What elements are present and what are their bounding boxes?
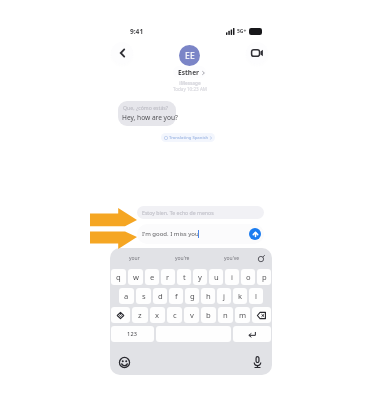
button[interactable]: [137, 224, 264, 244]
staticText: you've: [224, 255, 240, 262]
button[interactable]: b: [201, 307, 216, 323]
button[interactable]: [137, 206, 264, 219]
staticText: EE: [185, 50, 195, 62]
button[interactable]: EE: [179, 45, 200, 66]
button[interactable]: a: [119, 288, 134, 304]
button[interactable]: w: [128, 269, 143, 285]
button[interactable]: h: [201, 288, 215, 304]
staticText: 9:41: [130, 27, 144, 36]
staticText: r: [166, 272, 170, 282]
staticText: a: [124, 291, 129, 301]
button[interactable]: q: [111, 269, 126, 285]
staticText: j: [223, 291, 225, 301]
button[interactable]: p: [257, 269, 271, 285]
staticText: Que, ¿cómo estás?: [123, 104, 169, 111]
button[interactable]: Back: [111, 42, 133, 64]
staticText: t: [183, 272, 186, 282]
button[interactable]: Shift: [111, 307, 130, 323]
staticText: Esther: [178, 68, 200, 77]
button[interactable]: j: [217, 288, 231, 304]
staticText: you're: [175, 255, 190, 262]
staticText: k: [238, 291, 243, 301]
button[interactable]: t: [177, 269, 191, 285]
button[interactable]: n: [218, 307, 233, 323]
button[interactable]: Return: [233, 326, 271, 342]
button[interactable]: [118, 101, 176, 126]
staticText: 5G+: [237, 28, 247, 35]
staticText: o: [246, 272, 251, 282]
button[interactable]: l: [249, 288, 263, 304]
staticText: iMessage: [179, 80, 201, 86]
staticText: i: [231, 272, 233, 282]
button[interactable]: Dictate: [250, 354, 265, 369]
staticText: c: [173, 310, 177, 320]
button[interactable]: Backspace: [252, 307, 271, 323]
staticText: y: [198, 272, 202, 282]
button[interactable]: Video call: [246, 42, 268, 64]
staticText: z: [138, 310, 142, 320]
staticText: v: [190, 310, 194, 320]
staticText: n: [223, 310, 228, 320]
staticText: I'm good. I miss you: [142, 230, 199, 238]
button[interactable]: Emoji: [117, 355, 132, 370]
staticText: 123: [127, 330, 138, 338]
staticText: Translating Spanish: [169, 135, 209, 141]
button[interactable]: v: [184, 307, 199, 323]
button[interactable]: y: [193, 269, 207, 285]
button[interactable]: r: [161, 269, 175, 285]
staticText: Today 10:23 AM: [173, 86, 207, 92]
button[interactable]: your: [110, 248, 158, 269]
staticText: g: [190, 291, 195, 301]
staticText: s: [142, 291, 146, 301]
button[interactable]: you've: [207, 248, 256, 269]
staticText: l: [255, 291, 257, 301]
button[interactable]: g: [185, 288, 199, 304]
staticText: p: [262, 272, 267, 282]
button[interactable]: [173, 66, 206, 78]
staticText: Estoy bien. Te echo de menos: [142, 209, 214, 216]
staticText: e: [150, 272, 155, 282]
staticText: w: [133, 272, 139, 282]
button[interactable]: Translating Spanish: [164, 133, 212, 142]
button[interactable]: Stickers: [253, 248, 269, 269]
staticText: Hey, how are you?: [122, 113, 178, 122]
staticText: d: [158, 291, 163, 301]
button[interactable]: i: [225, 269, 239, 285]
staticText: f: [175, 291, 178, 301]
button[interactable]: k: [233, 288, 247, 304]
staticText: u: [214, 272, 219, 282]
button[interactable]: c: [167, 307, 182, 323]
button[interactable]: e: [145, 269, 159, 285]
button[interactable]: Send: [249, 228, 261, 240]
button[interactable]: Numbers: [111, 326, 154, 342]
staticText: b: [206, 310, 211, 320]
staticText: x: [155, 310, 160, 320]
button[interactable]: you're: [158, 248, 207, 269]
button[interactable]: s: [136, 288, 151, 304]
button[interactable]: f: [169, 288, 183, 304]
button[interactable]: u: [209, 269, 223, 285]
button[interactable]: z: [132, 307, 148, 323]
button[interactable]: m: [235, 307, 250, 323]
button[interactable]: d: [153, 288, 167, 304]
staticText: h: [206, 291, 211, 301]
staticText: your: [129, 255, 140, 262]
button[interactable]: x: [150, 307, 165, 323]
staticText: q: [116, 272, 121, 282]
staticText: m: [239, 310, 247, 320]
button[interactable]: o: [241, 269, 255, 285]
